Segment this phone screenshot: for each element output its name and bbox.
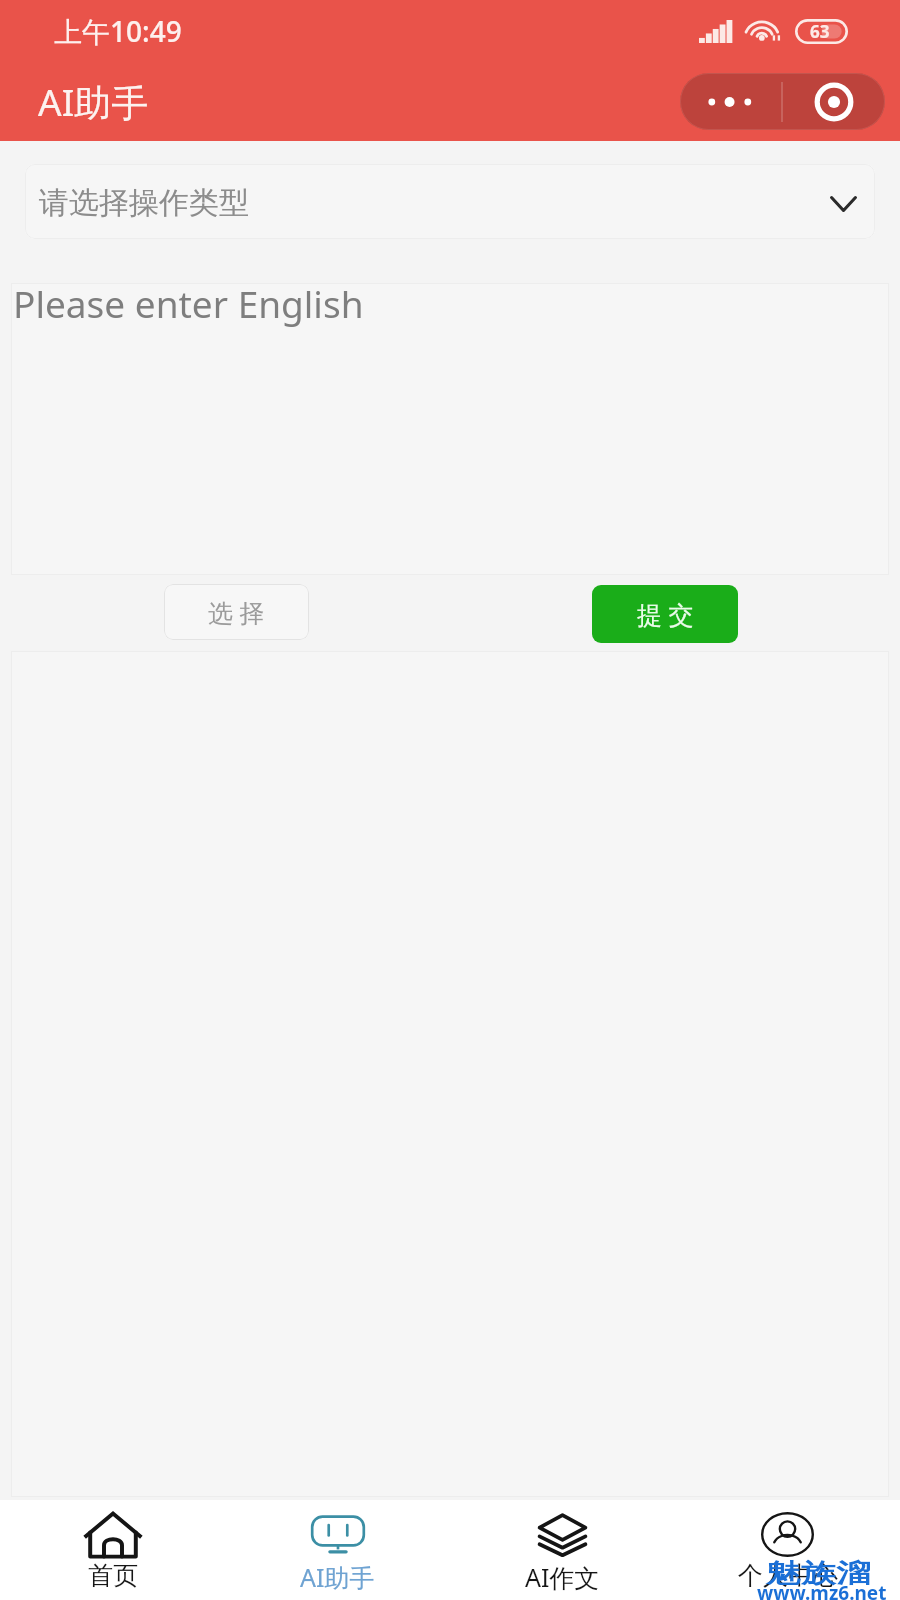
staticText: 请选择操作类型 xyxy=(39,184,249,222)
staticText: 选 择 xyxy=(208,595,265,629)
staticText: AI助手 xyxy=(300,1560,375,1594)
staticText: 首页 xyxy=(88,1560,138,1591)
staticText: AI作文 xyxy=(525,1560,600,1594)
button[interactable]: Please enter English xyxy=(11,283,889,575)
button[interactable]: AI助手 xyxy=(225,1500,450,1600)
staticText: AI助手 xyxy=(38,76,149,127)
button[interactable]: AI作文 xyxy=(450,1500,675,1600)
staticText: www.mz6.net xyxy=(757,1580,887,1600)
button[interactable]: More options xyxy=(680,73,781,130)
staticText: 63 xyxy=(810,20,830,43)
button[interactable]: 选 择 xyxy=(164,584,309,640)
staticText: 提 交 xyxy=(637,597,694,631)
button[interactable]: 首页 xyxy=(0,1500,225,1600)
staticText: 上午10:49 xyxy=(54,12,182,50)
staticText: 个人中心 xyxy=(738,1560,838,1591)
button[interactable]: 提 交 xyxy=(592,585,738,643)
button[interactable]: 个人中心 xyxy=(675,1500,900,1600)
staticText: 魅族溜 xyxy=(766,1557,871,1590)
staticText: Please enter English xyxy=(13,278,364,328)
button[interactable]: Close mini program xyxy=(783,73,885,130)
button[interactable]: 请选择操作类型 xyxy=(25,164,875,239)
